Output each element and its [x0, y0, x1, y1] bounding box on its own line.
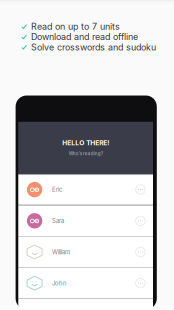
staticText: John — [52, 280, 67, 287]
staticText: William — [52, 248, 70, 256]
staticText: Read on up to 7 units — [31, 21, 120, 32]
staticText: Sara — [52, 217, 64, 224]
button[interactable]: Sara — [18, 206, 153, 236]
staticText: Solve crosswords and sudoku — [31, 42, 156, 52]
button[interactable]: More options for this profile — [134, 277, 146, 289]
staticText: Download and read offline — [31, 31, 138, 42]
button[interactable]: More options for this profile — [134, 215, 146, 227]
staticText: HELLO THERE! — [62, 139, 109, 147]
button[interactable]: More options for this profile — [134, 184, 146, 196]
button[interactable]: John — [18, 268, 153, 298]
button[interactable]: Eric — [18, 174, 153, 205]
button[interactable]: William — [18, 237, 153, 267]
button[interactable]: More options for this profile — [134, 246, 146, 258]
staticText: Eric — [52, 186, 62, 193]
staticText: Who’s reading? — [69, 151, 103, 156]
